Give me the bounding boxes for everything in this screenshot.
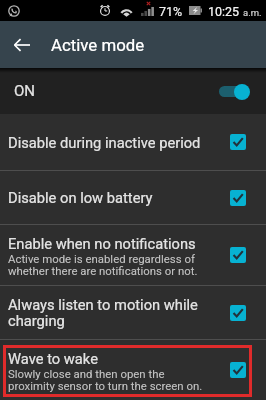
staticText: Wave to wake — [8, 350, 98, 367]
button[interactable]: Back — [0, 23, 44, 67]
button[interactable]: Disable on low battery — [0, 171, 266, 224]
button[interactable]: Checkbox — [230, 134, 246, 150]
button[interactable]: Wave to wake — [0, 340, 266, 398]
staticText: Active mode — [51, 35, 145, 55]
staticText: ON — [14, 82, 36, 100]
staticText: 10:25 — [208, 4, 240, 19]
button[interactable]: Checkbox — [230, 362, 246, 378]
staticText: Enable when no notifications — [8, 235, 196, 252]
staticText: Disable during inactive period — [8, 134, 201, 151]
button[interactable]: Checkbox — [230, 247, 246, 263]
staticText: Active mode is enabled regardless of whe… — [8, 252, 198, 277]
staticText: 71% — [159, 4, 183, 19]
button[interactable]: Checkbox — [230, 190, 246, 206]
staticText: a.m. — [243, 7, 262, 18]
staticText: Always listen to motion while charging — [8, 296, 198, 329]
button[interactable]: Enable when no notifications — [0, 225, 266, 285]
staticText: Disable on low battery — [8, 189, 153, 206]
button[interactable]: Always listen to motion while charging — [0, 286, 266, 339]
button[interactable]: Checkbox — [230, 305, 246, 321]
button[interactable]: ON — [0, 68, 266, 114]
staticText: Slowly close and then open the proximity… — [8, 367, 203, 392]
button[interactable]: Disable during inactive period — [0, 114, 266, 170]
